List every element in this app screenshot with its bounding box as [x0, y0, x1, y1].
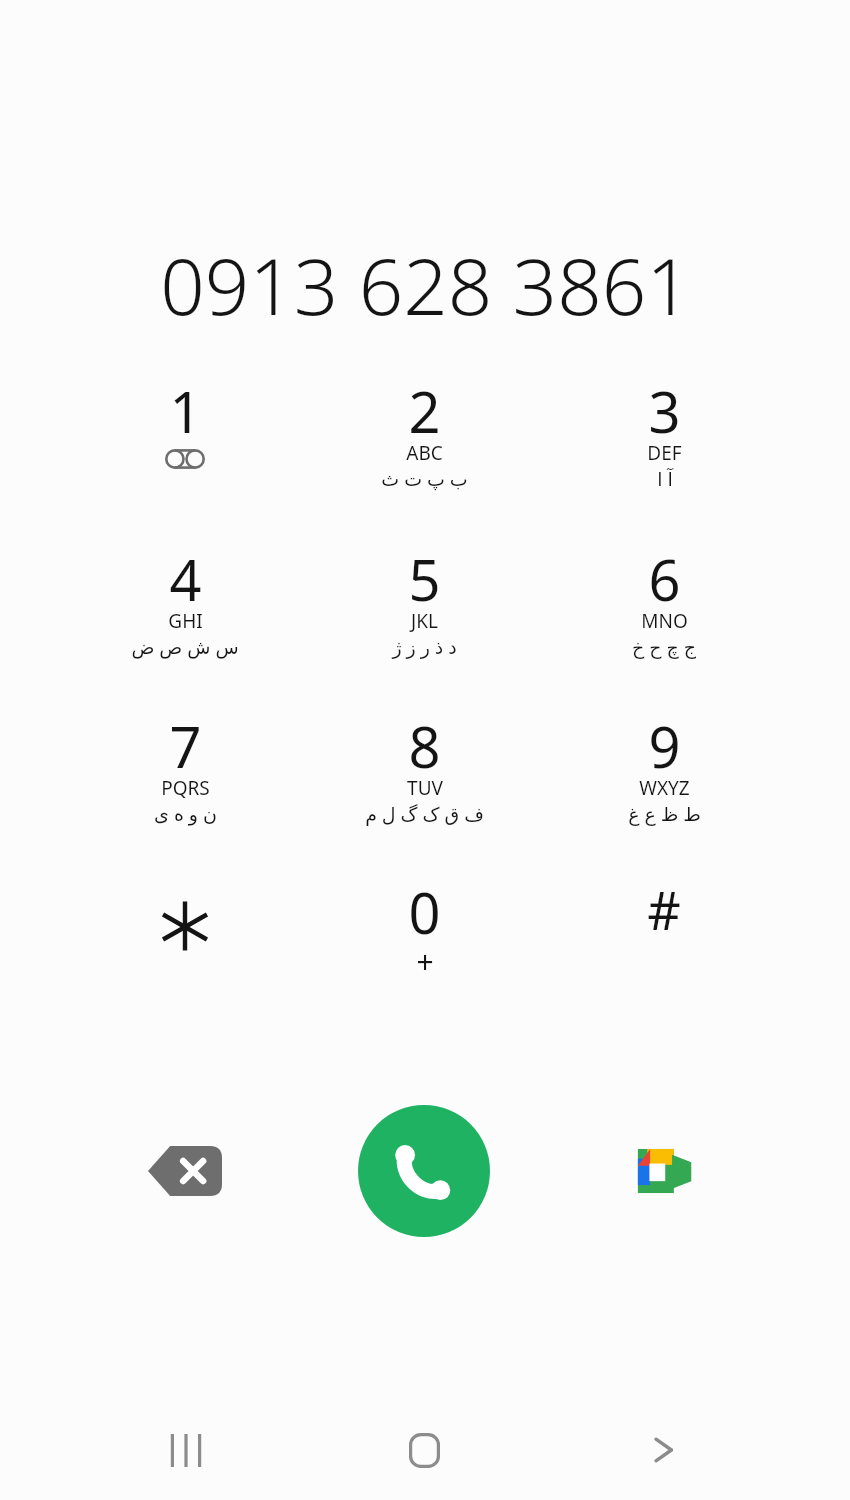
button[interactable]: 6	[564, 541, 764, 691]
staticText: JKL	[411, 608, 438, 634]
button[interactable]: 4	[85, 541, 285, 691]
staticText: TUV	[407, 775, 443, 801]
staticText: +	[416, 941, 434, 982]
staticText: 4	[169, 541, 202, 607]
button[interactable]: 1	[85, 373, 285, 523]
button[interactable]: 3	[564, 373, 764, 523]
staticText: WXYZ	[639, 775, 690, 801]
staticText: 5	[408, 541, 441, 607]
staticText: ط ظ ع غ	[628, 801, 701, 827]
staticText: 9	[648, 708, 681, 774]
button[interactable]: Home	[379, 1410, 469, 1490]
button[interactable]: 8	[324, 708, 524, 858]
staticText: MNO	[641, 608, 688, 634]
button[interactable]: Back	[618, 1410, 708, 1490]
staticText: DEF	[647, 440, 682, 466]
staticText: GHI	[168, 608, 203, 634]
button[interactable]: 5	[324, 541, 524, 691]
staticText: PQRS	[161, 775, 210, 801]
staticText: 0913 628 3861	[160, 232, 691, 336]
button[interactable]: Backspace	[120, 1111, 250, 1231]
staticText: ABC	[406, 440, 443, 466]
staticText: 2	[408, 373, 441, 439]
button[interactable]: Call	[358, 1105, 490, 1237]
button[interactable]: 2	[324, 373, 524, 523]
staticText: د ذ ر ز ژ	[392, 634, 457, 660]
staticText: 1	[169, 373, 202, 439]
button[interactable]: Pound	[564, 874, 764, 1024]
staticText: آ ا	[657, 466, 673, 492]
staticText: 3	[648, 373, 681, 439]
staticText: #	[647, 874, 681, 940]
staticText: ن و ه ی	[154, 801, 217, 827]
staticText: ف ق ک گ ل م	[365, 801, 484, 827]
button[interactable]: 9	[564, 708, 764, 858]
staticText: س ش ص ض	[131, 634, 239, 660]
staticText: ب پ ت ث	[381, 466, 468, 492]
button[interactable]: 0	[324, 874, 524, 1024]
button[interactable]: Video call	[604, 1111, 724, 1231]
button[interactable]: Recents	[141, 1410, 231, 1490]
button[interactable]: 7	[85, 708, 285, 858]
staticText: 0	[408, 874, 441, 940]
button[interactable]: Star	[115, 888, 255, 1038]
staticText: ج چ ح خ	[632, 634, 696, 660]
staticText: 7	[169, 708, 202, 774]
staticText: 8	[408, 708, 441, 774]
staticText: 6	[648, 541, 681, 607]
